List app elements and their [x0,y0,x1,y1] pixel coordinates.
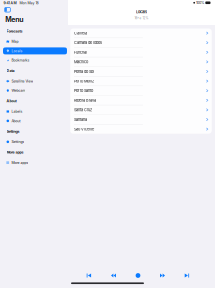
staticText: Locals [11,49,22,53]
staticText: About [11,119,20,123]
staticText: Labels [11,109,22,114]
button[interactable]: Labels [3,108,67,115]
button[interactable]: Hide sidebar [3,6,12,14]
staticText: Locais [136,9,147,14]
staticText: Data [7,69,15,73]
staticText: Machico [74,60,88,64]
staticText: Bookmarks [11,58,29,62]
button[interactable]: Ribeira Brava [70,96,212,105]
button[interactable]: Santana [70,115,212,124]
staticText: Webcam [11,88,25,93]
button[interactable]: Câmara de lobos [70,38,212,48]
staticText: Menu [5,15,23,24]
button[interactable]: Map [3,38,67,45]
button[interactable]: Porto Santo [70,86,212,96]
button[interactable]: Ponta do Sol [70,67,212,76]
staticText: 9:41 AM [3,1,16,5]
staticText: Forecasts [7,29,23,33]
staticText: Mon May 18 [16,1,38,5]
staticText: Calheta [74,31,87,35]
staticText: Ribeira Brava [74,98,96,103]
button[interactable]: Previous track [86,273,92,278]
button[interactable]: Satellite View [3,78,67,85]
staticText: 100% [195,1,204,5]
staticText: Map [11,39,18,44]
staticText: Settings [11,140,24,144]
button[interactable]: More apps [3,159,67,166]
button[interactable]: Webcam [3,87,67,94]
staticText: Câmara de lobos [74,40,102,45]
button[interactable]: Rewind [110,273,116,278]
staticText: Porto Moniz [74,79,94,83]
button[interactable]: Santa Cruz [70,105,212,115]
button[interactable]: Next track [184,273,190,278]
staticText: More apps [11,161,28,165]
staticText: More apps [7,150,24,154]
button[interactable]: Settings [3,138,67,145]
staticText: Funchal [74,50,87,55]
button[interactable]: Porto Moniz [70,76,212,86]
staticText: Santana [74,117,87,122]
button[interactable]: São Vicente [70,124,212,134]
button[interactable]: Play [135,273,141,278]
button[interactable]: Bookmarks [3,57,67,64]
staticText: São Vicente [74,127,94,131]
button[interactable]: Funchal [70,48,212,57]
button[interactable]: Fast forward [159,273,165,278]
button[interactable]: About [3,117,67,124]
button[interactable]: Calheta [70,28,212,38]
button[interactable]: Locals [3,47,67,54]
staticText: Satellite View [11,79,33,83]
staticText: About [7,99,17,103]
staticText: Settings [7,129,20,134]
staticText: Ponta do Sol [74,69,94,74]
staticText: 16º e 12% [134,16,148,20]
staticText: Santa Cruz [74,108,92,112]
staticText: Porto Santo [74,88,93,93]
button[interactable]: Machico [70,57,212,67]
